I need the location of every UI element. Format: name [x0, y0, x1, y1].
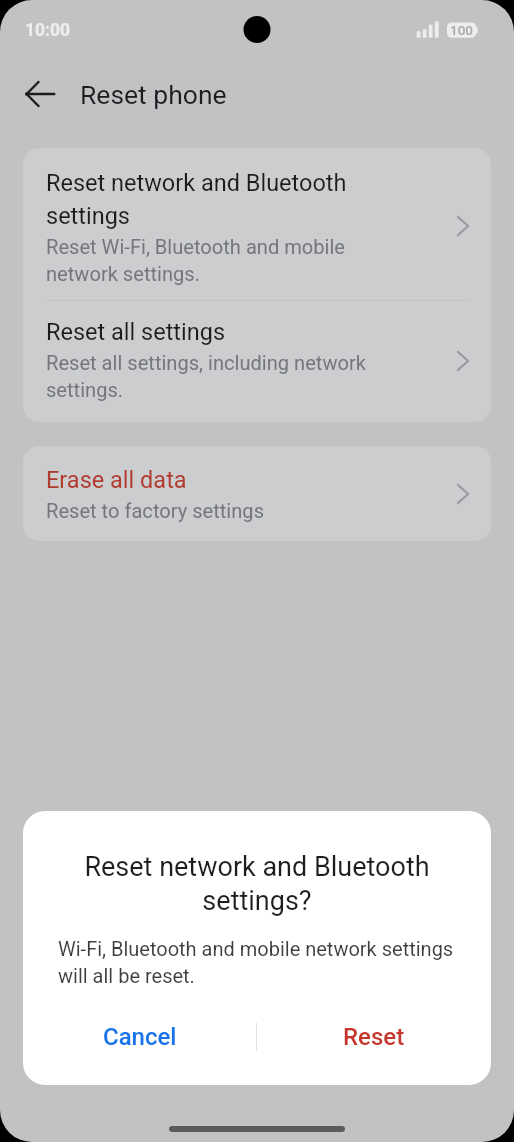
staticText: 10:00: [25, 20, 71, 41]
staticText: Reset to factory settings: [46, 499, 398, 523]
staticText: Erase all data: [46, 466, 398, 494]
button[interactable]: Cancel: [23, 1010, 256, 1064]
staticText: Reset phone: [80, 79, 227, 110]
staticText: Wi-Fi, Bluetooth and mobile network sett…: [58, 937, 475, 988]
staticText: Reset network and Bluetooth settings?: [57, 851, 457, 917]
staticText: Reset all settings: [46, 318, 398, 346]
button[interactable]: Back: [12, 66, 68, 122]
staticText: Reset: [343, 1023, 405, 1051]
staticText: 100: [450, 22, 474, 38]
button[interactable]: Reset all settings: [23, 301, 491, 422]
button[interactable]: Reset: [257, 1010, 491, 1064]
staticText: Reset all settings, including network se…: [46, 351, 398, 402]
button[interactable]: Erase all data: [23, 446, 491, 541]
staticText: Cancel: [103, 1023, 177, 1051]
staticText: Reset network and Bluetooth settings: [46, 169, 398, 230]
button[interactable]: Reset network and Bluetooth settings: [23, 148, 491, 300]
staticText: Reset Wi-Fi, Bluetooth and mobile networ…: [46, 235, 398, 286]
